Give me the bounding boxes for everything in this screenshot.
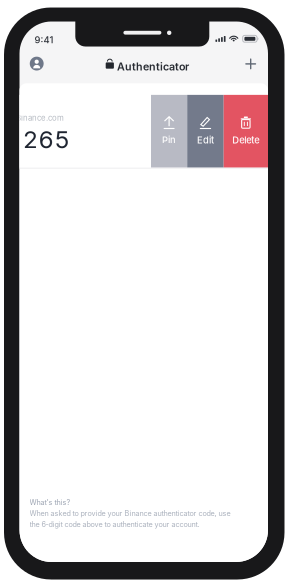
staticText: What's this? bbox=[29, 498, 70, 507]
staticText: Authenticator bbox=[117, 60, 189, 73]
button[interactable]: Delete bbox=[224, 95, 268, 168]
staticText: the 6-digit code above to authenticate y… bbox=[29, 520, 199, 529]
button[interactable]: Account bbox=[22, 49, 52, 79]
staticText: 9:41 bbox=[34, 34, 53, 46]
button[interactable]: Edit bbox=[187, 95, 224, 168]
staticText: 6 bbox=[39, 125, 54, 154]
button[interactable]: Pin bbox=[151, 95, 187, 168]
button[interactable]: Binance.com bbox=[19, 95, 170, 168]
staticText: 5 bbox=[55, 125, 69, 154]
staticText: 2 bbox=[23, 125, 37, 154]
staticText: 2 bbox=[2, 125, 16, 154]
staticText: When asked to provide your Binance authe… bbox=[29, 509, 230, 518]
button[interactable]: Add account bbox=[236, 49, 266, 79]
staticText: Pin bbox=[162, 134, 176, 146]
staticText: Binance.com bbox=[16, 113, 64, 123]
staticText: Delete bbox=[232, 134, 259, 146]
staticText: Edit bbox=[197, 134, 214, 146]
